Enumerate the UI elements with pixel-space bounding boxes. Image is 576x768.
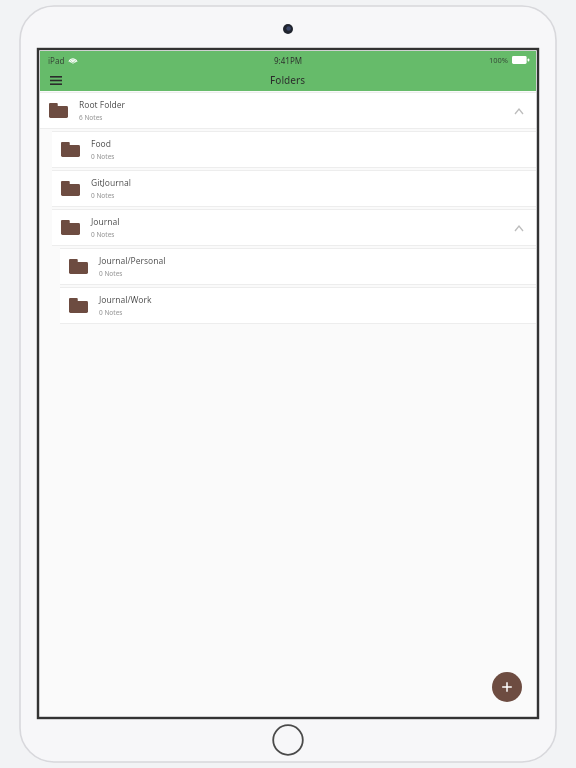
staticText: 0 Notes: [91, 152, 115, 161]
button[interactable]: Open navigation drawer: [45, 69, 67, 91]
staticText: 0 Notes: [91, 191, 115, 200]
button[interactable]: Journal: [52, 209, 536, 246]
staticText: Journal/Personal: [99, 255, 166, 267]
staticText: Journal/Work: [99, 294, 152, 306]
staticText: iPad: [48, 55, 65, 66]
button[interactable]: Journal/Work: [60, 287, 536, 324]
staticText: Food: [91, 138, 111, 150]
staticText: 0 Notes: [91, 230, 115, 239]
button[interactable]: Collapse Journal: [512, 221, 526, 235]
button[interactable]: Collapse Root Folder: [512, 104, 526, 118]
button[interactable]: Root Folder: [40, 92, 536, 129]
staticText: 6 Notes: [79, 113, 103, 122]
staticText: 0 Notes: [99, 269, 123, 278]
button[interactable]: GitJournal: [52, 170, 536, 207]
staticText: GitJournal: [91, 177, 131, 189]
staticText: 9:41PM: [274, 55, 303, 66]
staticText: 100%: [489, 55, 509, 65]
button[interactable]: Journal/Personal: [60, 248, 536, 285]
staticText: 0 Notes: [99, 308, 123, 317]
staticText: Folders: [270, 73, 306, 87]
staticText: Root Folder: [79, 99, 126, 111]
button[interactable]: Add new folder: [492, 672, 522, 702]
staticText: Journal: [91, 216, 120, 228]
button[interactable]: Food: [52, 131, 536, 168]
